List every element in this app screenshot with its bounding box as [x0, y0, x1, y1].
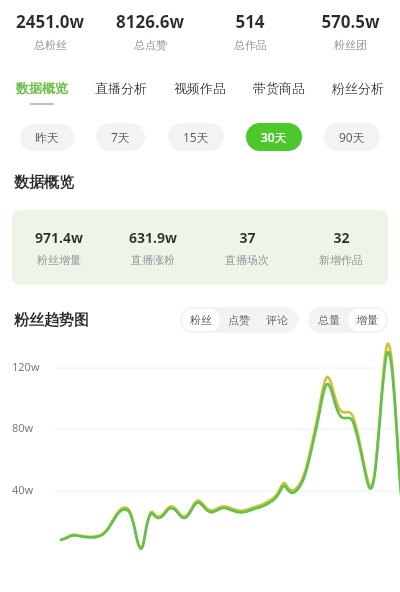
staticText: 总点赞 [134, 38, 167, 52]
staticText: 90天 [339, 129, 365, 145]
button[interactable]: 直播分析 [93, 80, 149, 105]
staticText: 32 [333, 228, 350, 247]
button[interactable]: 带货商品 [251, 80, 307, 105]
staticText: 粉丝 [190, 313, 212, 327]
staticText: 30天 [261, 129, 287, 145]
button[interactable]: 视频作品 [172, 80, 228, 105]
staticText: 带货商品 [253, 80, 305, 96]
staticText: 视频作品 [174, 80, 226, 96]
button[interactable]: 数据概览 [14, 80, 70, 105]
button[interactable]: 增量 [348, 309, 386, 331]
staticText: 80w [12, 420, 34, 435]
staticText: 2451.0w [16, 10, 84, 33]
staticText: 总粉丝 [34, 38, 67, 52]
staticText: 570.5w [321, 10, 380, 33]
staticText: 粉丝增量 [37, 253, 81, 267]
staticText: 数据概览 [14, 173, 74, 192]
button[interactable]: 粉丝 [182, 309, 220, 331]
staticText: 631.9w [129, 228, 177, 247]
staticText: 7天 [111, 129, 130, 145]
staticText: 总作品 [234, 38, 267, 52]
button[interactable]: 总量 [310, 309, 348, 331]
button[interactable]: 评论 [258, 309, 296, 331]
staticText: 120w [12, 359, 40, 374]
staticText: 40w [12, 482, 34, 497]
button[interactable]: 7天 [96, 123, 145, 151]
staticText: 新增作品 [319, 253, 363, 267]
staticText: 数据概览 [16, 80, 68, 96]
staticText: 971.4w [35, 228, 83, 247]
staticText: 评论 [266, 313, 288, 327]
button[interactable]: 90天 [324, 123, 380, 151]
button[interactable]: 30天 [246, 123, 302, 151]
staticText: 直播涨粉 [131, 253, 175, 267]
staticText: 直播分析 [95, 80, 147, 96]
staticText: 昨天 [35, 130, 59, 145]
button[interactable]: 971.4w [12, 210, 388, 285]
staticText: 15天 [183, 129, 209, 145]
staticText: 514 [235, 10, 265, 33]
button[interactable]: 粉丝分析 [330, 80, 386, 105]
staticText: 粉丝分析 [332, 80, 384, 96]
staticText: 粉丝趋势图 [14, 311, 89, 330]
staticText: 增量 [356, 313, 378, 327]
staticText: 粉丝团 [334, 38, 367, 52]
button[interactable]: 点赞 [220, 309, 258, 331]
staticText: 总量 [318, 313, 340, 327]
staticText: 直播场次 [225, 253, 269, 267]
button[interactable]: 昨天 [20, 124, 74, 151]
staticText: 8126.6w [116, 10, 184, 33]
button[interactable]: 15天 [168, 123, 224, 151]
staticText: 37 [239, 228, 256, 247]
staticText: 点赞 [228, 313, 250, 327]
